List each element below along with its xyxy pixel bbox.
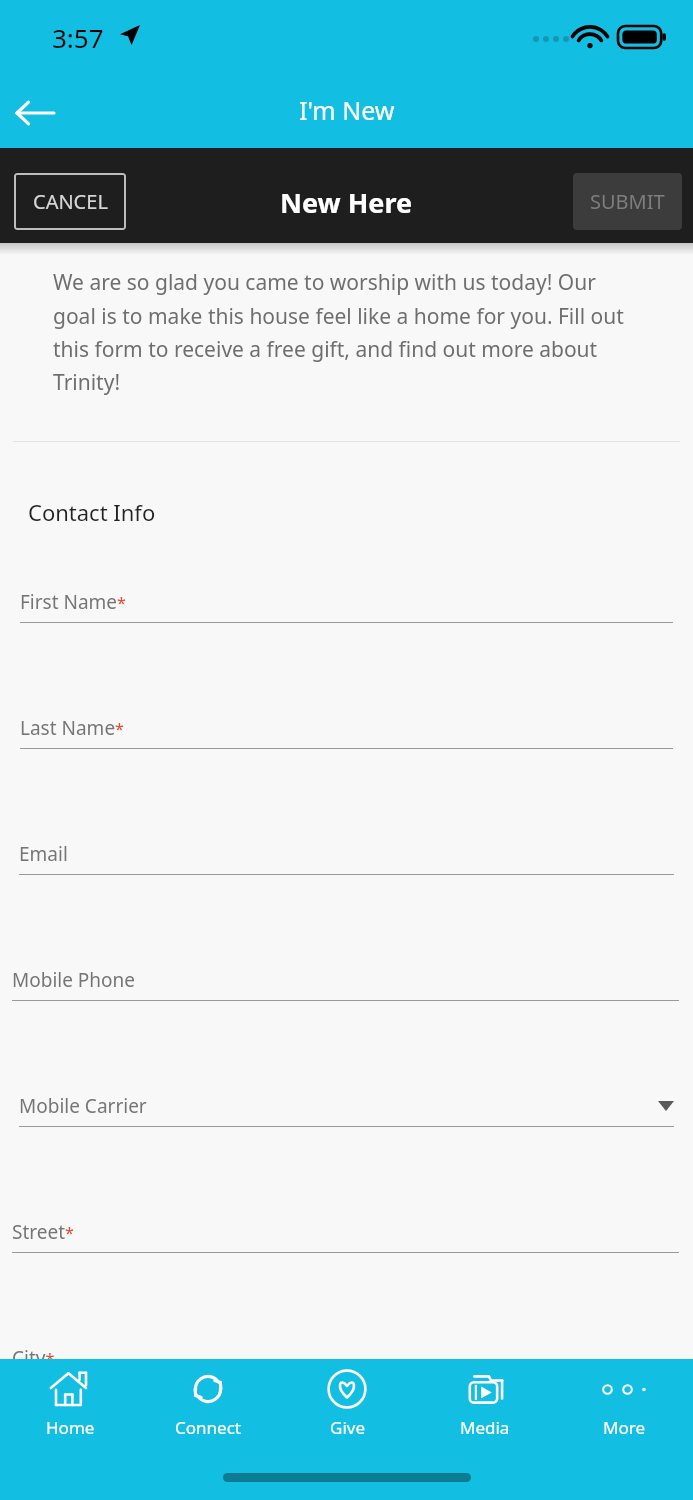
staticText: Contact Info <box>28 497 156 527</box>
button[interactable]: More <box>555 1359 693 1439</box>
button[interactable]: SUBMIT <box>573 173 682 230</box>
button[interactable]: Mobile Phone <box>0 967 693 1001</box>
button[interactable]: City* <box>0 1345 693 1359</box>
staticText: 3:57 <box>52 20 104 55</box>
staticText: City* <box>12 1345 55 1359</box>
button[interactable]: Last Name* <box>0 715 693 749</box>
staticText: First Name* <box>20 589 126 615</box>
button[interactable]: Media <box>416 1359 554 1439</box>
staticText: Give <box>330 1416 365 1439</box>
button[interactable]: CANCEL <box>14 173 126 230</box>
staticText: We are so glad you came to worship with … <box>53 268 635 396</box>
staticText: New Here <box>280 184 413 221</box>
staticText: CANCEL <box>33 188 108 215</box>
button[interactable]: Mobile Carrier <box>0 1093 693 1127</box>
button[interactable]: First Name* <box>0 589 693 623</box>
button[interactable]: Give <box>278 1359 416 1439</box>
button[interactable]: Home <box>1 1359 139 1439</box>
button[interactable]: Connect <box>139 1359 277 1439</box>
staticText: Media <box>460 1416 510 1439</box>
button[interactable]: Email <box>0 841 693 875</box>
staticText: Street* <box>12 1219 74 1245</box>
button[interactable]: Back <box>4 82 66 144</box>
staticText: Home <box>46 1416 95 1439</box>
staticText: I'm New <box>299 93 395 127</box>
staticText: Mobile Phone <box>12 967 136 993</box>
button[interactable]: Street* <box>0 1219 693 1253</box>
staticText: Email <box>19 841 68 867</box>
staticText: SUBMIT <box>590 188 665 215</box>
staticText: Connect <box>175 1416 241 1439</box>
staticText: Mobile Carrier <box>19 1093 147 1119</box>
staticText: More <box>603 1416 645 1439</box>
staticText: Last Name* <box>20 715 124 741</box>
